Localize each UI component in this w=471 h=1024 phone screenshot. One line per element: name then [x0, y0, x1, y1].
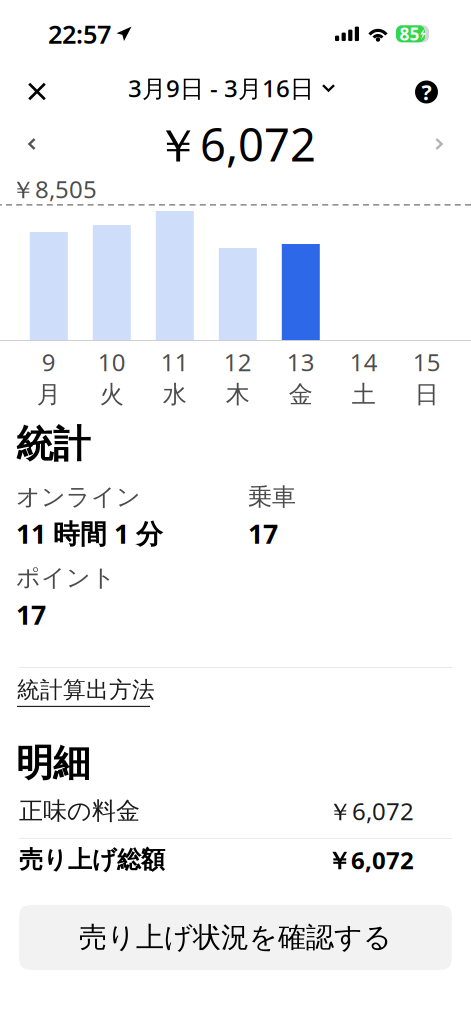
- staticText: 11: [161, 346, 189, 378]
- staticText: ￥6,072: [328, 795, 414, 827]
- staticText: 13: [287, 346, 315, 378]
- button[interactable]: 売り上げ状況を確認する: [19, 905, 452, 970]
- staticText: 14: [350, 346, 378, 378]
- button[interactable]: Previous week: [14, 126, 50, 162]
- staticText: 11 時間 1 分: [16, 516, 163, 551]
- staticText: 売り上げ総額: [19, 845, 165, 875]
- staticText: ￥6,072: [155, 114, 316, 174]
- staticText: 12: [224, 346, 252, 378]
- staticText: 17: [248, 516, 278, 551]
- staticText: 明細: [16, 740, 90, 786]
- button[interactable]: 3月9日 - 3月16日: [122, 61, 341, 115]
- staticText: 火: [100, 380, 124, 409]
- staticText: ポイント: [16, 563, 116, 593]
- staticText: 金: [289, 380, 313, 409]
- staticText: 3月9日 - 3月16日: [128, 72, 314, 104]
- button[interactable]: 統計算出方法: [0, 668, 471, 713]
- staticText: オンライン: [16, 482, 141, 512]
- staticText: 乗車: [248, 482, 296, 512]
- staticText: 統計算出方法: [17, 676, 155, 704]
- staticText: 9: [42, 346, 56, 378]
- staticText: 10: [98, 346, 126, 378]
- button[interactable]: Next week: [421, 126, 457, 162]
- staticText: 統計: [16, 421, 90, 467]
- staticText: 月: [37, 380, 61, 409]
- staticText: 17: [16, 597, 46, 632]
- staticText: 土: [352, 380, 376, 409]
- staticText: 85: [399, 22, 419, 45]
- button[interactable]: Close: [11, 65, 64, 110]
- staticText: ￥6,072: [327, 844, 414, 876]
- staticText: 22:57: [48, 17, 111, 51]
- staticText: 木: [226, 380, 250, 409]
- staticText: 水: [163, 380, 187, 409]
- staticText: 正味の料金: [19, 796, 140, 826]
- staticText: ￥8,505: [11, 173, 97, 205]
- staticText: 15: [413, 346, 441, 378]
- staticText: ?: [421, 78, 431, 106]
- staticText: 日: [415, 380, 439, 409]
- staticText: 売り上げ状況を確認する: [79, 920, 392, 955]
- button[interactable]: Help: [399, 64, 460, 111]
